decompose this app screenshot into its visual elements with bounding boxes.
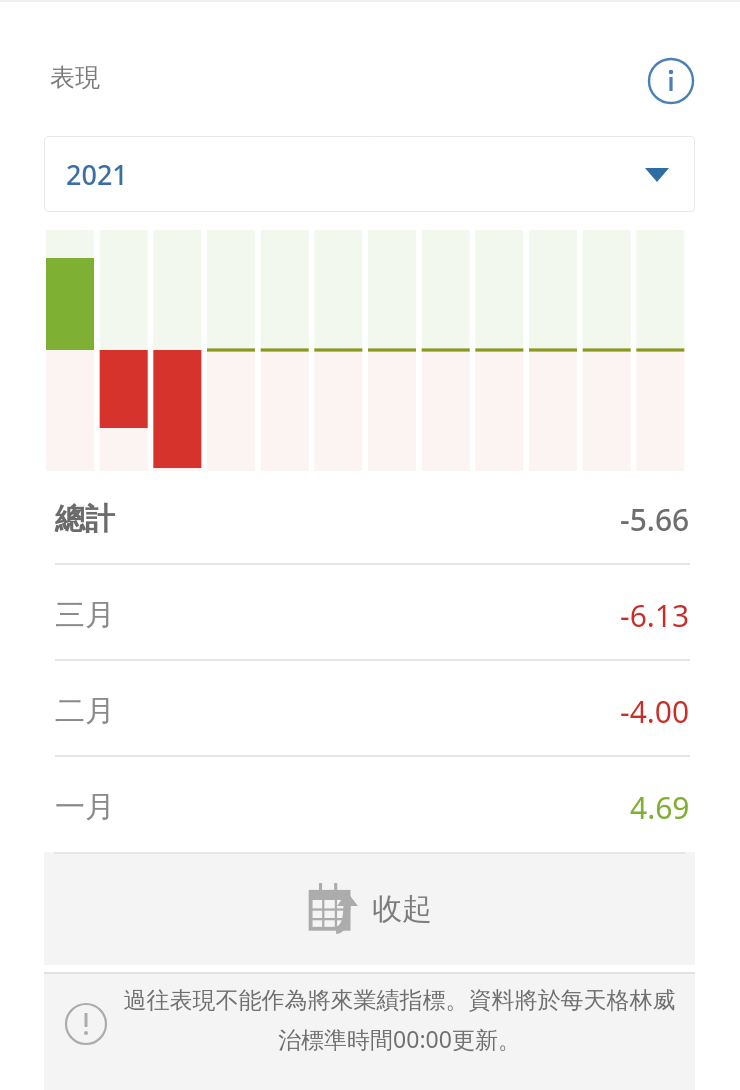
staticText: 三月 [55, 596, 115, 634]
staticText: 總計 [55, 500, 115, 538]
staticText: -5.66 [620, 499, 690, 540]
button[interactable]: Information [647, 57, 695, 105]
staticText: -4.00 [620, 691, 690, 732]
staticText: 二月 [55, 692, 115, 730]
button[interactable]: 總計 [55, 490, 690, 548]
staticText: 表現 [50, 62, 100, 93]
staticText: -6.13 [620, 595, 690, 636]
staticText: 收起 [372, 890, 432, 928]
button[interactable]: 2021 [44, 136, 695, 212]
button[interactable]: 一月 [55, 778, 690, 836]
button[interactable]: 表現 [50, 62, 100, 93]
button[interactable]: 收起 [44, 852, 695, 965]
button[interactable]: 二月 [55, 682, 690, 740]
staticText: 一月 [55, 788, 115, 826]
button[interactable]: 三月 [55, 586, 690, 644]
staticText: 過往表現不能作為將來業績指標。資料將於每天格林威治標準時間00:00更新。 [118, 986, 681, 1055]
staticText: 4.69 [630, 787, 690, 828]
staticText: 2021 [66, 156, 128, 193]
